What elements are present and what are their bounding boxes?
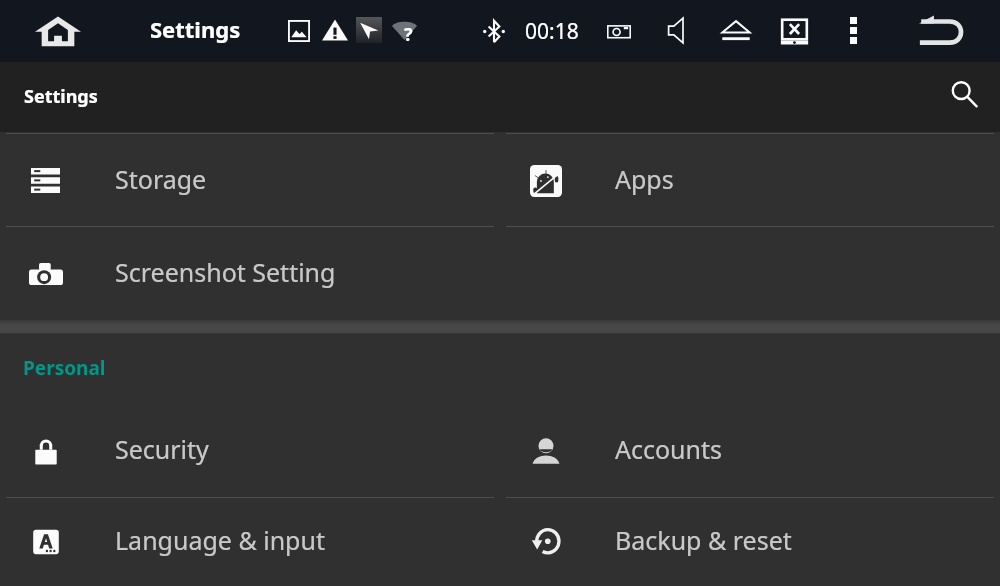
staticText: ? (404, 22, 413, 47)
button[interactable]: Eject (718, 18, 754, 44)
button[interactable]: Back (919, 15, 963, 45)
staticText: Settings (150, 14, 241, 44)
staticText: Storage (115, 162, 207, 196)
staticText: Language & input (115, 523, 325, 557)
staticText: Screenshot Setting (115, 255, 336, 289)
button[interactable]: Screenshot Setting (0, 227, 500, 320)
button[interactable]: Volume (667, 17, 687, 44)
button[interactable]: More options (850, 17, 857, 44)
button[interactable]: Apps (500, 134, 1000, 227)
button[interactable]: Search (943, 73, 984, 114)
staticText: Apps (615, 162, 674, 196)
button[interactable]: Language & input (0, 498, 500, 586)
button[interactable]: Close screen (779, 16, 810, 46)
staticText: Settings (24, 84, 98, 109)
button[interactable]: Backup & reset (500, 498, 1000, 586)
button[interactable]: Home (31, 11, 85, 51)
staticText: 00:18 (525, 17, 579, 46)
button[interactable]: Security (0, 404, 500, 498)
staticText: Backup & reset (615, 523, 792, 557)
button[interactable]: Accounts (500, 404, 1000, 498)
staticText: Personal (23, 355, 106, 381)
button[interactable]: Screenshot (607, 23, 631, 39)
staticText: Accounts (615, 432, 723, 466)
staticText: Security (115, 432, 209, 466)
button[interactable]: Storage (0, 134, 500, 227)
